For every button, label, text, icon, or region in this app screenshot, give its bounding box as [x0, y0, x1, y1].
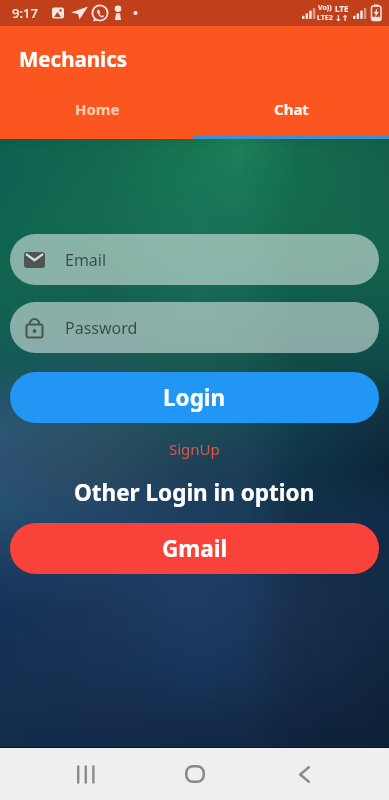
- staticText: Email: [65, 249, 107, 271]
- button[interactable]: Email: [10, 234, 379, 285]
- staticText: Mechanics: [19, 45, 128, 73]
- staticText: ↓↑: [335, 14, 349, 23]
- staticText: Chat: [274, 99, 309, 119]
- staticText: Gmail: [162, 533, 228, 564]
- button[interactable]: Password: [10, 302, 379, 353]
- button[interactable]: Recent apps: [57, 748, 115, 800]
- button[interactable]: Home: [0, 83, 194, 135]
- staticText: Vo)): [318, 3, 332, 13]
- button[interactable]: Chat: [194, 83, 389, 135]
- button[interactable]: SignUp: [169, 439, 220, 459]
- staticText: LTE: [335, 3, 349, 14]
- staticText: Password: [65, 317, 138, 339]
- button[interactable]: Back: [275, 748, 333, 800]
- staticText: Other Login in option: [74, 477, 315, 507]
- staticText: Login: [163, 382, 226, 413]
- staticText: Home: [75, 99, 120, 119]
- button[interactable]: Gmail: [10, 523, 379, 574]
- staticText: LTE2: [317, 13, 333, 23]
- staticText: 9:17: [12, 4, 38, 22]
- button[interactable]: Home: [166, 748, 224, 800]
- button[interactable]: Login: [10, 372, 379, 423]
